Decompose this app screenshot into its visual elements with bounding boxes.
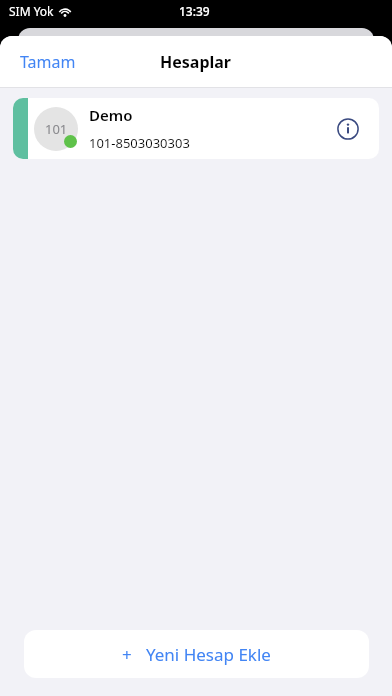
staticText: Hesaplar [160, 51, 232, 73]
button[interactable]: Account info [331, 112, 365, 146]
staticText: Demo [89, 105, 133, 125]
staticText: SIM Yok [9, 3, 54, 19]
staticText: Tamam [20, 51, 76, 73]
staticText: + [122, 643, 132, 666]
staticText: 101 [45, 120, 68, 138]
button[interactable]: + [24, 630, 369, 678]
button[interactable]: 101 [13, 98, 379, 159]
staticText: 101-8503030303 [89, 134, 190, 152]
staticText: Yeni Hesap Ekle [146, 643, 271, 666]
button[interactable]: Tamam [0, 45, 88, 79]
staticText: 13:39 [179, 3, 210, 19]
